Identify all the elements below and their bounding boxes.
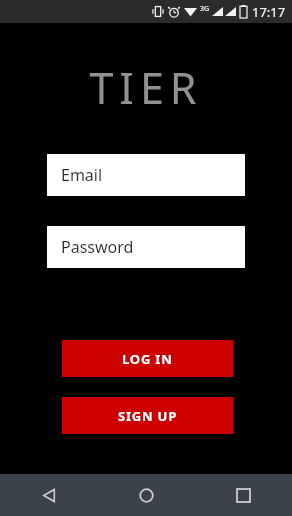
staticText: Email — [61, 164, 103, 186]
button[interactable]: SIGN UP — [62, 397, 233, 434]
button[interactable]: Recent apps — [195, 474, 292, 516]
staticText: LOG IN — [122, 350, 173, 368]
button[interactable]: LOG IN — [62, 340, 233, 377]
staticText: TIER — [89, 58, 203, 117]
button[interactable]: Password — [47, 226, 245, 268]
button[interactable]: Email — [47, 154, 245, 196]
button[interactable]: Back — [0, 474, 98, 516]
staticText: Password — [61, 236, 134, 258]
staticText: 3G — [200, 4, 210, 14]
staticText: SIGN UP — [118, 407, 178, 425]
button[interactable]: Home — [98, 474, 195, 516]
staticText: 17:17 — [252, 3, 286, 21]
